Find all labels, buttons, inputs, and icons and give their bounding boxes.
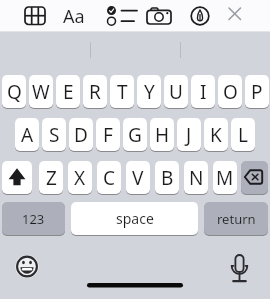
staticText: Y bbox=[144, 79, 155, 105]
staticText: H bbox=[155, 122, 170, 148]
staticText: K bbox=[210, 122, 222, 148]
staticText: T bbox=[117, 79, 128, 105]
button[interactable]: C bbox=[97, 161, 121, 194]
staticText: L bbox=[238, 122, 248, 148]
button[interactable] bbox=[226, 4, 244, 28]
button[interactable] bbox=[144, 4, 174, 28]
button[interactable] bbox=[188, 4, 212, 28]
button[interactable]: T bbox=[110, 75, 134, 108]
staticText: Aa bbox=[63, 4, 85, 28]
button[interactable]: J bbox=[177, 118, 201, 151]
staticText: I bbox=[200, 79, 207, 105]
button[interactable]: H bbox=[150, 118, 174, 151]
button[interactable]: B bbox=[155, 161, 179, 194]
button[interactable]: A bbox=[15, 118, 39, 151]
staticText: space bbox=[116, 209, 154, 228]
button[interactable]: U bbox=[164, 75, 188, 108]
button[interactable]: N bbox=[184, 161, 208, 194]
button[interactable] bbox=[241, 161, 268, 194]
staticText: W bbox=[32, 79, 50, 105]
staticText: M bbox=[216, 165, 234, 191]
button[interactable]: L bbox=[231, 118, 255, 151]
button[interactable]: Q bbox=[2, 75, 26, 108]
button[interactable]: I bbox=[191, 75, 215, 108]
button[interactable]: P bbox=[245, 75, 269, 108]
button[interactable]: D bbox=[69, 118, 93, 151]
staticText: Q bbox=[7, 79, 22, 105]
staticText: J bbox=[186, 122, 192, 148]
staticText: C bbox=[103, 165, 116, 191]
staticText: F bbox=[103, 122, 113, 148]
button[interactable]: W bbox=[29, 75, 53, 108]
button[interactable]: V bbox=[126, 161, 150, 194]
button[interactable] bbox=[22, 4, 48, 28]
button[interactable]: Aa bbox=[60, 4, 88, 28]
button[interactable]: 123 bbox=[2, 202, 65, 235]
button[interactable]: space bbox=[71, 202, 198, 235]
button[interactable]: G bbox=[123, 118, 147, 151]
staticText: 123 bbox=[22, 210, 45, 228]
button[interactable]: M bbox=[213, 161, 237, 194]
staticText: X bbox=[74, 165, 86, 191]
staticText: B bbox=[161, 165, 174, 191]
button[interactable]: Y bbox=[137, 75, 161, 108]
staticText: A bbox=[21, 122, 34, 148]
staticText: Z bbox=[46, 165, 57, 191]
staticText: U bbox=[169, 79, 183, 105]
button[interactable] bbox=[103, 4, 141, 28]
button[interactable] bbox=[2, 161, 32, 194]
staticText: D bbox=[74, 122, 88, 148]
staticText: S bbox=[49, 122, 60, 148]
staticText: R bbox=[89, 79, 101, 105]
staticText: G bbox=[128, 122, 142, 148]
button[interactable]: F bbox=[96, 118, 120, 151]
staticText: E bbox=[63, 79, 74, 105]
staticText: O bbox=[223, 79, 238, 105]
button[interactable] bbox=[226, 253, 253, 284]
staticText: return bbox=[217, 210, 256, 228]
button[interactable]: O bbox=[218, 75, 242, 108]
button[interactable] bbox=[14, 253, 41, 280]
staticText: N bbox=[189, 165, 204, 191]
button[interactable]: X bbox=[68, 161, 92, 194]
button[interactable]: Z bbox=[39, 161, 63, 194]
staticText: P bbox=[251, 79, 263, 105]
button[interactable]: S bbox=[42, 118, 66, 151]
button[interactable]: K bbox=[204, 118, 228, 151]
button[interactable]: return bbox=[204, 202, 268, 235]
button[interactable]: R bbox=[83, 75, 107, 108]
staticText: V bbox=[132, 165, 144, 191]
button[interactable]: E bbox=[56, 75, 80, 108]
